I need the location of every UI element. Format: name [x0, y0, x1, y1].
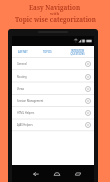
- button[interactable]: General: [12, 57, 94, 70]
- staticText: AJAX Helpers: [17, 123, 33, 127]
- button[interactable]: AJAX Helpers: [12, 119, 94, 131]
- staticText: HTML Helpers: [17, 111, 35, 115]
- staticText: with: [50, 11, 60, 16]
- button[interactable]: Home: [50, 167, 63, 180]
- button[interactable]: Session Management: [12, 95, 94, 107]
- button[interactable]: INTERVIEW QUESTIONS: [60, 46, 94, 57]
- staticText: Routing: [17, 75, 27, 79]
- button[interactable]: Views: [12, 83, 94, 95]
- staticText: Session Management: [17, 99, 44, 103]
- staticText: INTERVIEW QUESTIONS: [70, 49, 85, 55]
- staticText: Topic wise categorization: [15, 15, 96, 24]
- button[interactable]: ASP.NET: [12, 46, 34, 57]
- staticText: TOPICS: [43, 50, 52, 53]
- button[interactable]: Recent apps: [71, 167, 84, 180]
- staticText: General: [17, 62, 27, 66]
- staticText: Easy Navigation: [29, 3, 81, 12]
- button[interactable]: HTML Helpers: [12, 107, 94, 119]
- staticText: Views: [17, 87, 24, 91]
- button[interactable]: Back: [29, 167, 42, 180]
- button[interactable]: TOPICS: [34, 46, 60, 57]
- staticText: ASP.NET: [18, 50, 28, 53]
- button[interactable]: Routing: [12, 70, 94, 83]
